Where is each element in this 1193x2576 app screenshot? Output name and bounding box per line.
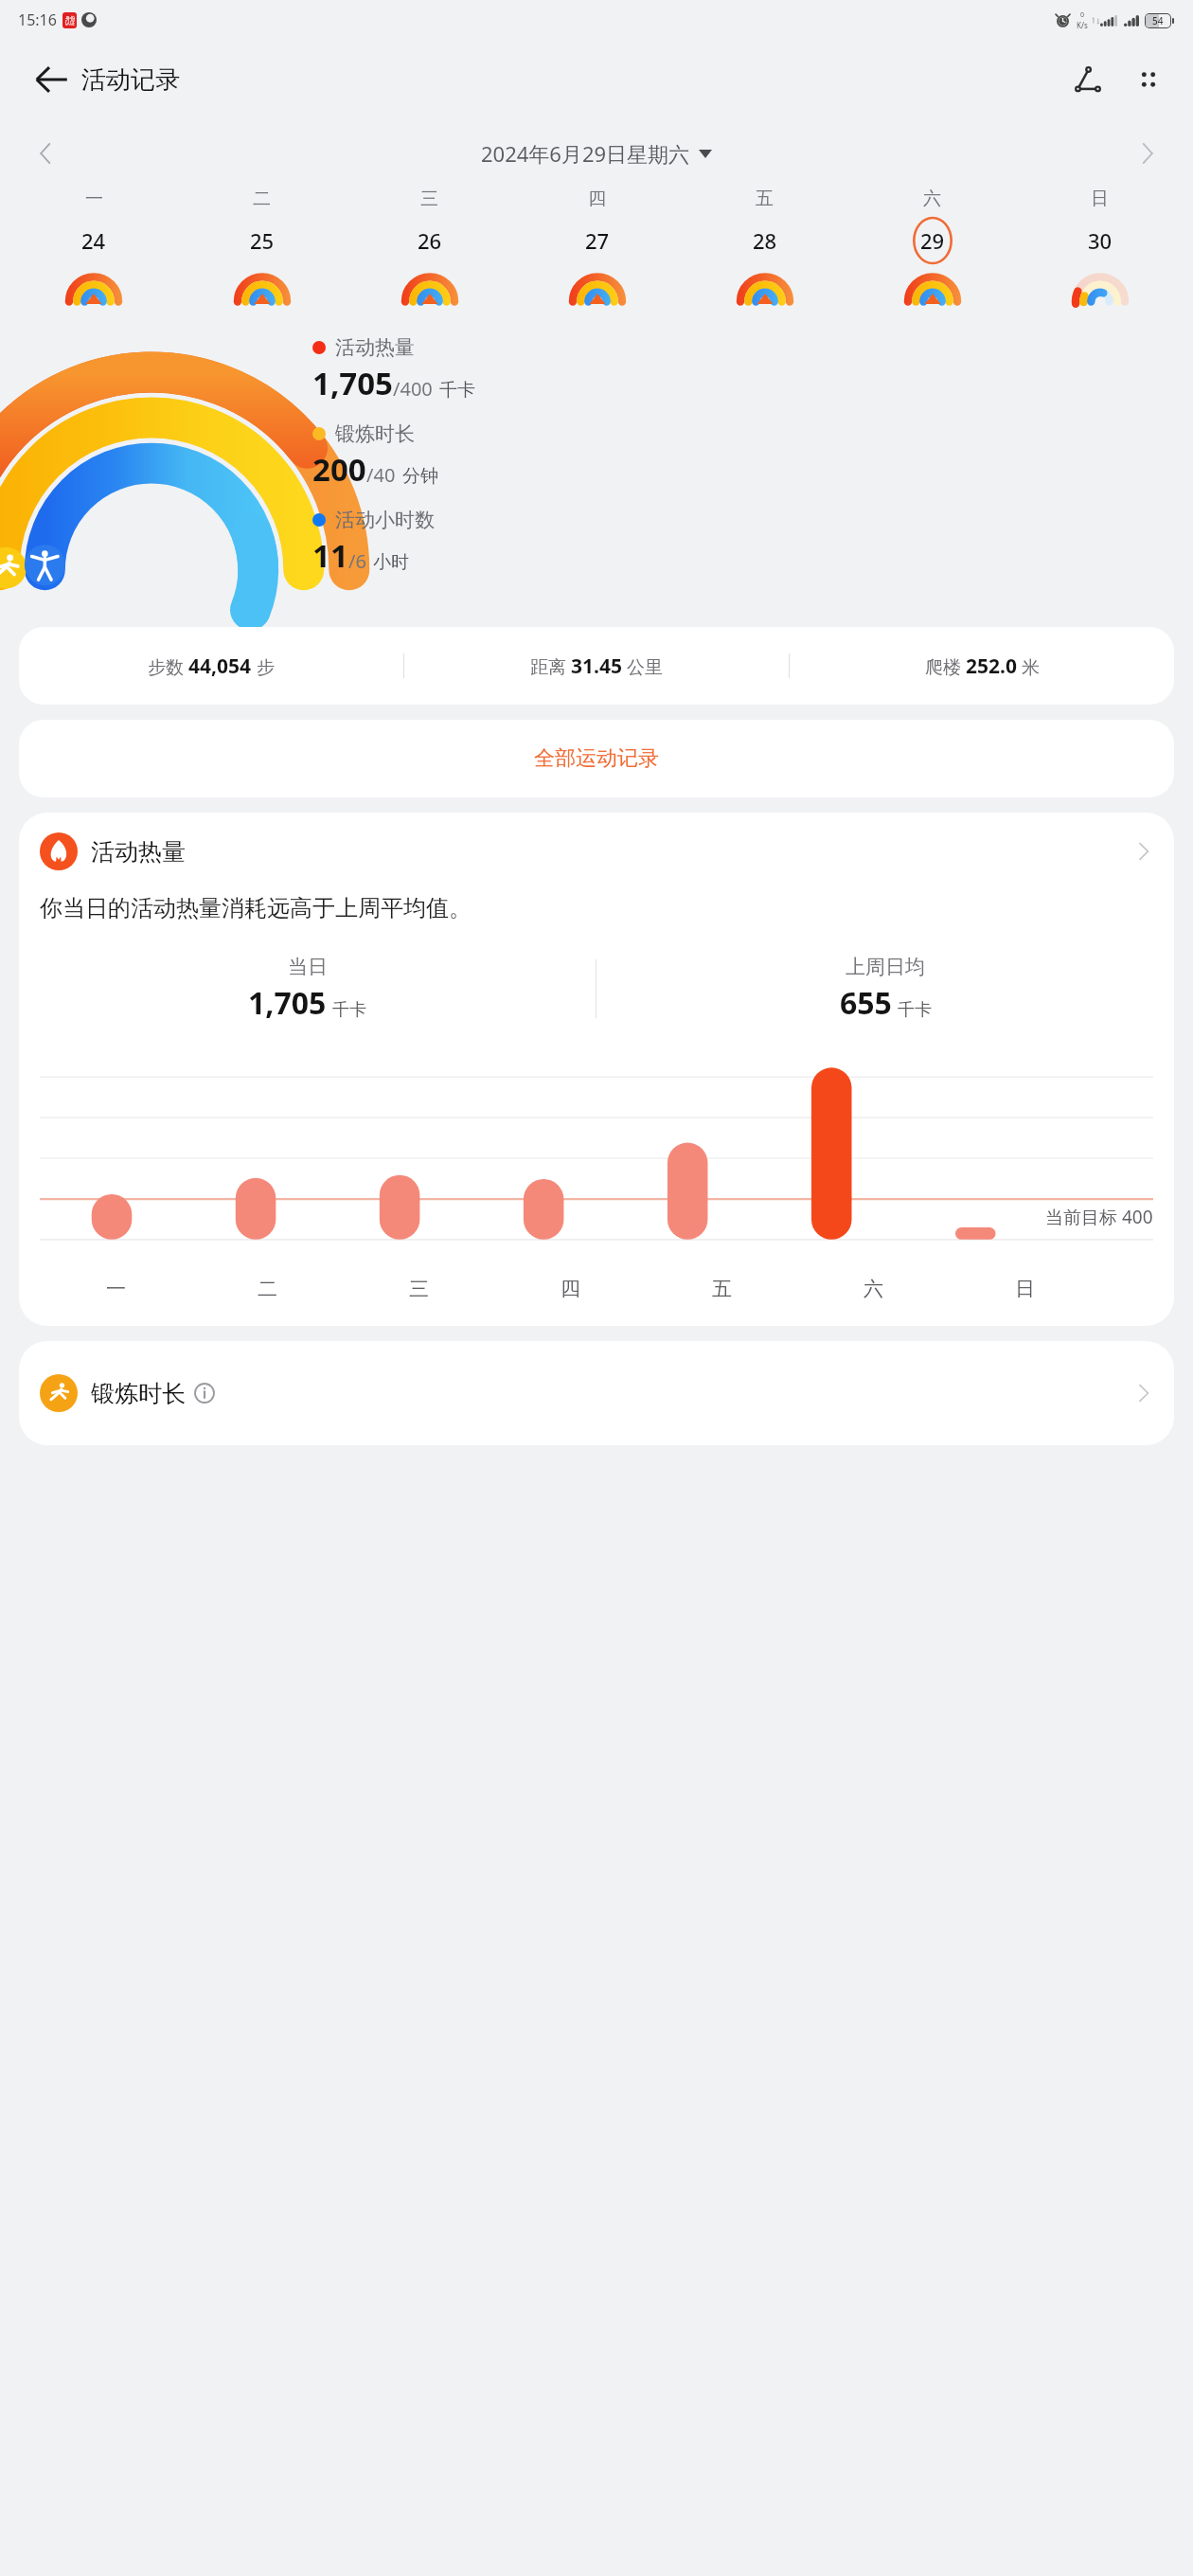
staticText: 1,705 — [248, 982, 327, 1024]
staticText: 31.45 — [571, 653, 622, 680]
staticText: 当日 — [288, 955, 328, 979]
staticText: 44,054 — [188, 653, 252, 680]
staticText: 二 — [253, 188, 271, 210]
button[interactable]: Share — [1064, 56, 1112, 103]
staticText: 1,705 — [312, 362, 393, 404]
staticText: 爬楼 — [925, 654, 966, 679]
button[interactable]: 三 — [346, 188, 513, 309]
staticText: 24 — [81, 226, 106, 255]
staticText: 日 — [1015, 1277, 1035, 1301]
staticText: 小时 — [373, 551, 409, 574]
staticText: 655 — [840, 982, 892, 1024]
staticText: 27 — [585, 226, 610, 255]
staticText: 四 — [561, 1277, 580, 1301]
staticText: 千卡 — [898, 999, 932, 1021]
staticText: /40 — [366, 462, 396, 488]
staticText: 你当日的活动热量消耗远高于上周平均值。 — [40, 894, 472, 922]
staticText: 15:16 — [18, 9, 57, 30]
staticText: 锻炼时长 — [335, 421, 415, 446]
button[interactable]: 步数 — [19, 627, 1174, 705]
staticText: 二 — [258, 1277, 277, 1301]
button[interactable]: Next day — [1123, 129, 1172, 178]
button[interactable]: 全部运动记录 — [19, 720, 1174, 797]
button[interactable]: 日 — [1016, 188, 1184, 309]
button[interactable]: 2024年6月29日星期六 — [481, 139, 712, 168]
button[interactable]: 四 — [513, 188, 681, 309]
staticText: 当前目标 400 — [1045, 1205, 1153, 1229]
staticText: 公里 — [622, 654, 663, 679]
staticText: 252.0 — [966, 653, 1017, 680]
staticText: 2024年6月29日星期六 — [481, 139, 690, 168]
staticText: 五 — [756, 188, 774, 210]
staticText: 步 — [252, 654, 275, 679]
staticText: 步数 — [148, 654, 188, 679]
button[interactable]: More options — [1125, 56, 1172, 103]
staticText: 一 — [85, 188, 103, 210]
staticText: 54 — [1152, 14, 1164, 27]
staticText: 千卡 — [332, 999, 366, 1021]
staticText: 一 — [106, 1277, 126, 1301]
staticText: 30 — [1088, 226, 1113, 255]
staticText: /400 — [393, 376, 433, 402]
staticText: 六 — [864, 1277, 883, 1301]
staticText: 米 — [1017, 654, 1040, 679]
staticText: /6 — [348, 548, 366, 574]
staticText: 全部运动记录 — [534, 745, 659, 772]
staticText: 25 — [250, 226, 275, 255]
button[interactable]: 锻炼时长 — [19, 1341, 1174, 1445]
staticText: 锻炼时长 — [91, 1379, 186, 1408]
staticText: 26 — [418, 226, 442, 255]
staticText: 日 — [1091, 188, 1109, 210]
staticText: 四 — [588, 188, 606, 210]
staticText: 身份 认证 — [65, 15, 75, 27]
staticText: 活动记录 — [81, 64, 180, 96]
staticText: 28 — [753, 226, 777, 255]
staticText: 0 — [1080, 10, 1085, 20]
staticText: 分钟 — [402, 465, 438, 488]
staticText: 五 — [712, 1277, 732, 1301]
staticText: 三 — [409, 1277, 429, 1301]
staticText: 上周日均 — [846, 955, 925, 979]
staticText: 200 — [312, 448, 366, 491]
button[interactable]: 六 — [848, 188, 1016, 309]
staticText: K/s — [1077, 20, 1088, 30]
button[interactable]: 活动热量 — [19, 813, 1174, 890]
staticText: 千卡 — [439, 379, 475, 402]
staticText: 距离 — [530, 654, 571, 679]
button[interactable]: 五 — [681, 188, 848, 309]
staticText: 活动热量 — [91, 837, 186, 867]
button[interactable]: Previous day — [21, 129, 70, 178]
button[interactable]: 二 — [178, 188, 346, 309]
button[interactable]: 一 — [9, 188, 178, 309]
button[interactable]: Back — [25, 53, 78, 106]
staticText: 三 — [420, 188, 438, 210]
staticText: 29 — [920, 226, 945, 255]
staticText: 活动热量 — [335, 335, 415, 360]
staticText: 11 — [312, 534, 348, 577]
staticText: 活动小时数 — [335, 508, 435, 532]
staticText: 六 — [923, 188, 941, 210]
